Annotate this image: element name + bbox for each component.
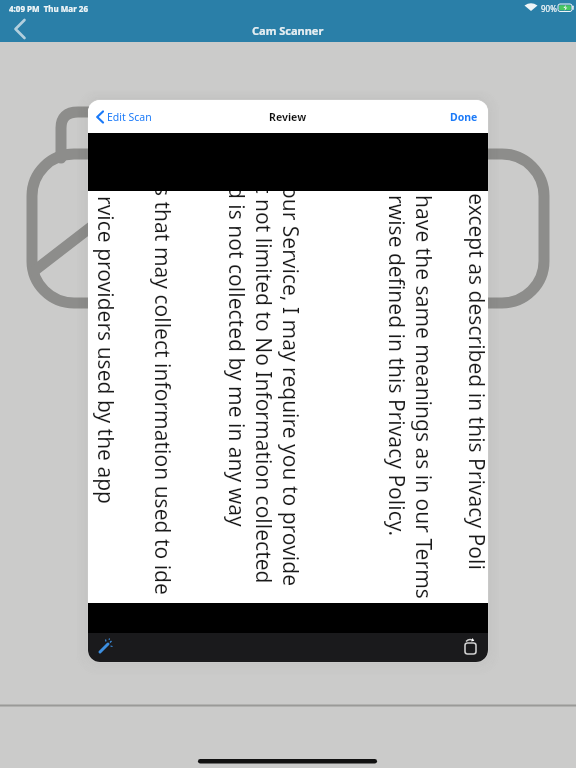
button[interactable] bbox=[456, 634, 484, 658]
staticText: Cam Scanner bbox=[252, 23, 324, 38]
button[interactable]: Done bbox=[450, 110, 488, 124]
staticText: Review bbox=[269, 110, 307, 124]
staticText: 4:09 PM Thu Mar 26 bbox=[9, 3, 88, 14]
button[interactable] bbox=[92, 634, 120, 658]
button[interactable] bbox=[6, 16, 34, 42]
staticText: 90% bbox=[541, 3, 557, 14]
staticText: Done bbox=[450, 110, 478, 124]
staticText: Edit Scan bbox=[107, 110, 152, 124]
button[interactable]: Edit Scan bbox=[88, 110, 152, 124]
